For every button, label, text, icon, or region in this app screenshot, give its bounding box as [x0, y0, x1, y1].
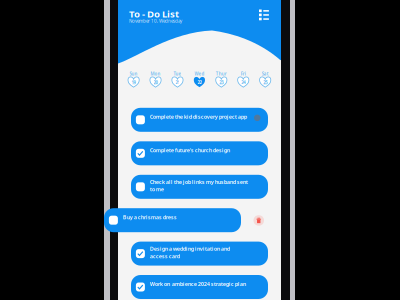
staticText: 19: [132, 80, 136, 85]
staticText: 20: [153, 80, 157, 85]
staticText: Tue: [173, 71, 181, 77]
staticText: 25: [263, 80, 267, 85]
staticText: Sun: [130, 71, 138, 77]
staticText: 22: [197, 80, 201, 85]
staticText: Mon: [150, 71, 160, 77]
staticText: To - Do List: [129, 7, 179, 20]
button[interactable]: Wed: [191, 71, 207, 87]
button[interactable]: Buy a chrismas dress: [104, 208, 241, 232]
button[interactable]: Complete future's church design: [131, 141, 268, 165]
staticText: Thur: [216, 71, 227, 77]
staticText: Sat: [262, 71, 269, 77]
staticText: 23: [219, 80, 223, 85]
staticText: Work on ambience 2024 strategic plan: [150, 280, 246, 288]
button[interactable]: Design a wedding invitation and access c…: [131, 242, 268, 266]
staticText: 24: [241, 80, 245, 85]
staticText: Complete future's church design: [150, 146, 230, 154]
staticText: Wed: [194, 71, 204, 77]
button[interactable]: Tue: [169, 71, 185, 87]
button[interactable]: Sun: [126, 71, 142, 87]
button[interactable]: List view options: [259, 9, 269, 20]
button[interactable]: Delete task: [253, 215, 264, 226]
button[interactable]: Mon: [147, 71, 163, 87]
staticText: Buy a chrismas dress: [123, 213, 177, 221]
button[interactable]: Fri: [235, 71, 251, 87]
button[interactable]: Complete the kid discovery project app: [131, 108, 268, 132]
button[interactable]: Sat: [257, 71, 273, 87]
staticText: Fri: [241, 71, 246, 77]
staticText: November 10, Wednesday: [129, 18, 182, 24]
staticText: Design a wedding invitation and access c…: [150, 245, 230, 260]
staticText: Check all the job links my husband sent …: [150, 178, 248, 193]
staticText: 21: [175, 80, 179, 85]
button[interactable]: Thur: [213, 71, 229, 87]
staticText: Complete the kid discovery project app: [150, 113, 247, 120]
button[interactable]: Work on ambience 2024 strategic plan: [131, 275, 268, 299]
button[interactable]: Check all the job links my husband sent …: [131, 175, 268, 199]
